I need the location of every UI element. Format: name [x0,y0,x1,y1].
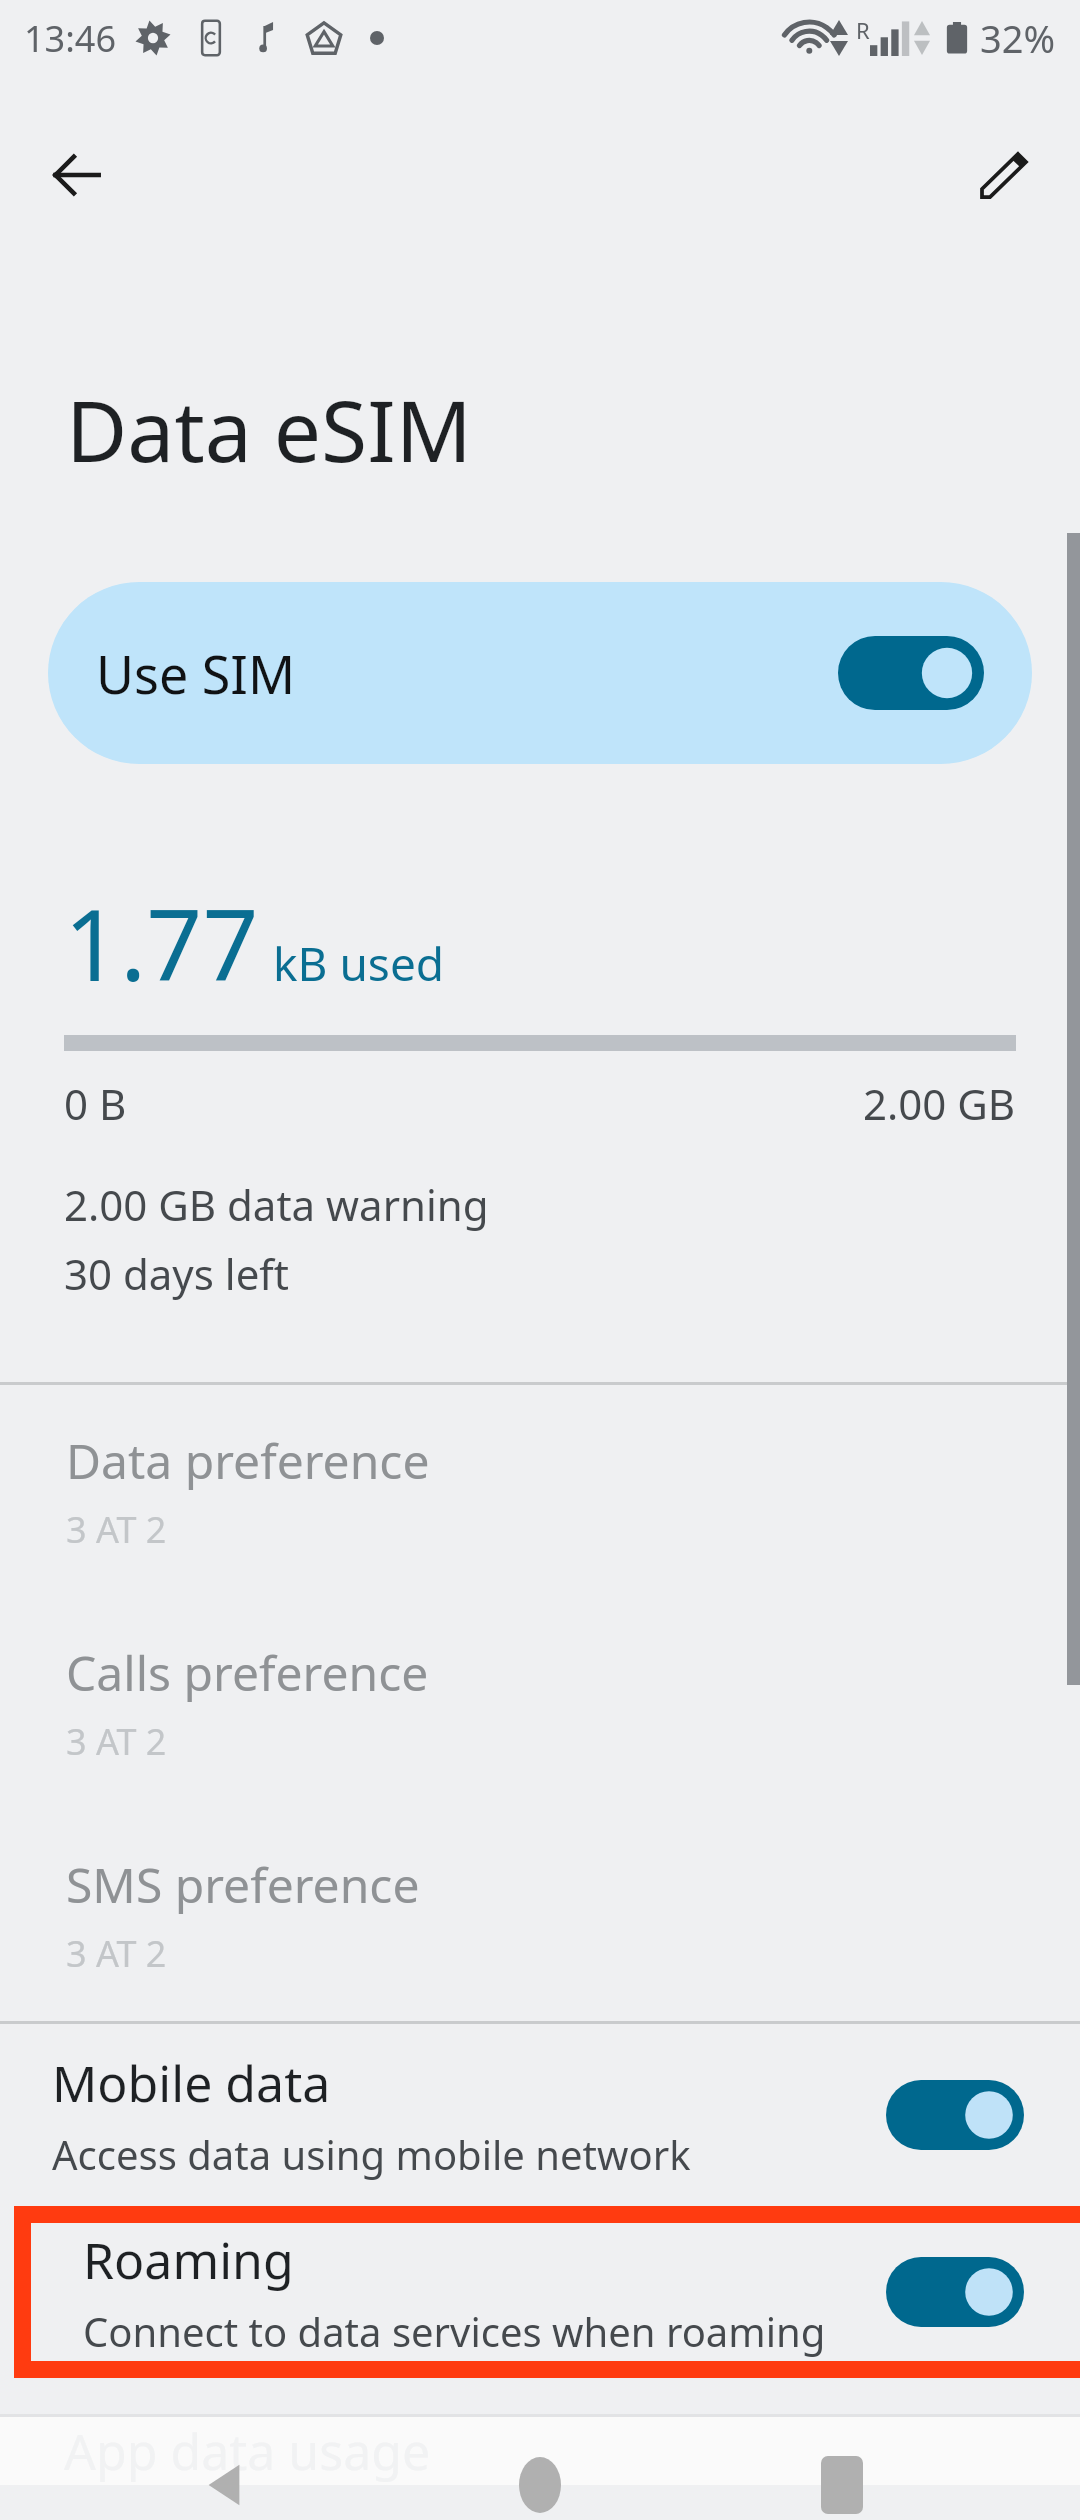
staticText: 2.00 GB [863,1075,1016,1132]
staticText: Use SIM [96,638,838,709]
button[interactable]: Use SIM [48,582,1032,764]
staticText: 3 AT 2 [66,1505,167,1554]
staticText: Data preference [66,1428,430,1493]
staticText: 2.00 GB data warning [64,1176,489,1233]
staticText: Access data using mobile network [52,2127,691,2181]
button[interactable]: Mobile data [0,2024,1080,2206]
button[interactable]: Calls preference [0,1597,1080,1809]
staticText: 32% [980,12,1056,64]
staticText: App data usage [64,2417,431,2485]
staticText: SMS preference [66,1852,420,1917]
staticText: Mobile data [52,2049,331,2117]
button[interactable]: Home [488,2450,592,2520]
staticText: 30 days left [64,1245,289,1302]
staticText: Connect to data services when roaming [83,2304,826,2358]
button[interactable]: Data preference [0,1385,1080,1597]
staticText: R [856,15,870,45]
button[interactable]: Back [172,2450,276,2520]
button[interactable]: Back [24,123,128,227]
staticText: 3 AT 2 [66,1929,167,1978]
staticText: kB used [273,932,445,995]
staticText: 3 AT 2 [66,1717,167,1766]
staticText: Calls preference [66,1640,429,1705]
button[interactable]: Recents [790,2450,894,2520]
button[interactable]: Roaming [31,2223,1080,2361]
button[interactable]: Edit [952,123,1056,227]
button[interactable]: SMS preference [0,1809,1080,2021]
staticText: Roaming [83,2226,294,2294]
staticText: 1.77 [64,876,259,1009]
staticText: 0 B [64,1075,127,1132]
staticText: Data eSIM [66,372,472,486]
staticText: 13:46 [24,14,117,63]
